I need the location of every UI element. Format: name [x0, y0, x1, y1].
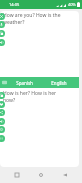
button[interactable]: Home — [34, 168, 48, 182]
button[interactable]: Settings — [0, 126, 5, 133]
button[interactable]: Recent apps — [10, 168, 24, 182]
staticText: Spanish — [16, 80, 33, 86]
button[interactable]: Close — [0, 13, 5, 20]
staticText: 14:05 — [9, 2, 20, 7]
button[interactable]: Favourite — [0, 101, 5, 108]
button[interactable]: Copy — [0, 92, 5, 99]
button[interactable]: Copy — [0, 30, 5, 37]
button[interactable]: Pause — [0, 135, 5, 142]
staticText: 40% — [68, 2, 76, 7]
staticText: English — [51, 80, 67, 86]
button[interactable]: Spanish — [7, 80, 41, 86]
staticText: How is her? How is her now? — [3, 90, 68, 103]
button[interactable]: Volume — [0, 39, 5, 46]
staticText: How are you? How is the weather? — [3, 12, 65, 25]
button[interactable]: Keyboard — [2, 80, 7, 85]
button[interactable]: Volume — [0, 118, 5, 125]
button[interactable]: Microphone — [0, 21, 5, 28]
button[interactable]: Share — [0, 109, 5, 116]
button[interactable]: English — [41, 80, 76, 86]
button[interactable]: Back — [58, 168, 72, 182]
